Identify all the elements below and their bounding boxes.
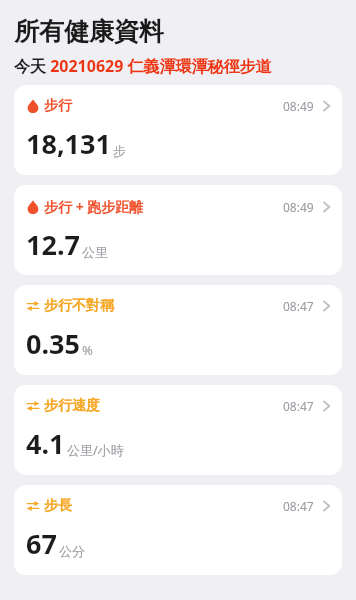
staticText: 公分 [59, 543, 85, 559]
other: Show details [323, 100, 330, 112]
button[interactable]: 步行 [14, 85, 342, 175]
staticText: 0.35 [26, 325, 80, 362]
staticText: 18,131 [26, 125, 111, 162]
staticText: 步行 [44, 97, 72, 115]
staticText: % [82, 341, 93, 359]
staticText: 08:47 [283, 298, 314, 314]
staticText: 08:47 [283, 398, 314, 414]
staticText: 步行 + 跑步距離 [44, 197, 144, 216]
staticText: 08:47 [283, 498, 314, 514]
other: Show details [323, 201, 330, 213]
staticText: 公里/小時 [67, 441, 124, 459]
staticText: 12.7 [26, 226, 80, 263]
button[interactable]: 步行速度 [14, 385, 342, 475]
staticText: 4.1 [26, 425, 65, 462]
staticText: 所有健康資料 [14, 16, 164, 47]
button[interactable]: 步行 + 跑步距離 [14, 185, 342, 275]
staticText: 08:49 [283, 199, 314, 215]
staticText: 67 [26, 525, 57, 562]
button[interactable]: 步長 [14, 485, 342, 575]
staticText: 步行不對稱 [44, 297, 114, 315]
other: Show details [323, 500, 330, 512]
staticText: 步 [113, 143, 126, 159]
staticText: 步行速度 [44, 397, 100, 415]
other: Show details [323, 300, 330, 312]
staticText: 08:49 [283, 98, 314, 114]
button[interactable]: 步行不對稱 [14, 285, 342, 375]
staticText: 公里 [82, 244, 108, 260]
staticText: 今天 20210629 仁義潭環潭秘徑步道 [14, 55, 272, 77]
staticText: 步長 [44, 497, 72, 515]
other: Show details [323, 400, 330, 412]
